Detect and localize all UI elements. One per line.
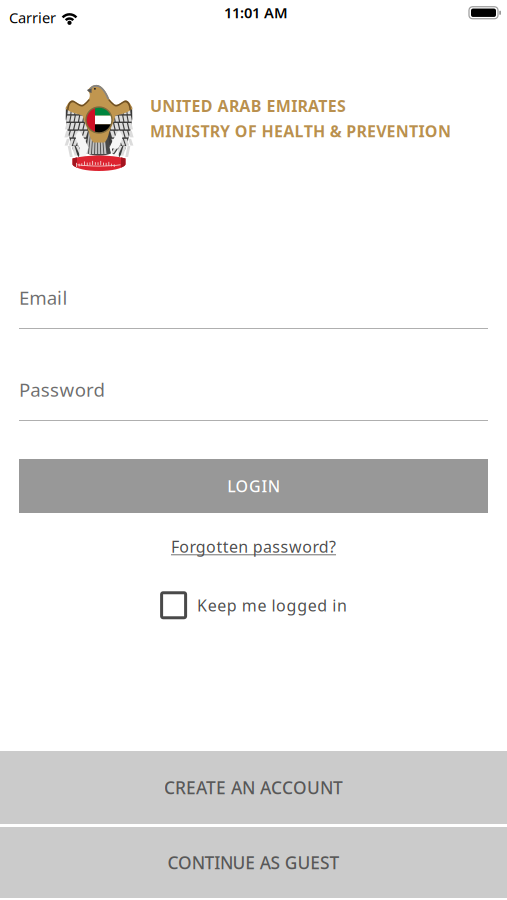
button[interactable]: LOGIN	[19, 459, 488, 513]
button[interactable]: Forgotten password?	[171, 528, 336, 565]
staticText: Forgotten password?	[171, 536, 336, 557]
staticText: UNITED ARAB EMIRATES	[150, 95, 346, 116]
staticText: Keep me logged in	[197, 595, 347, 616]
button[interactable]: Email	[19, 285, 488, 329]
button[interactable]: Keep me logged in	[160, 586, 347, 624]
staticText: 11:01 AM	[224, 3, 288, 22]
button[interactable]: Password	[19, 377, 488, 421]
staticText: MINISTRY OF HEALTH & PREVENTION	[150, 120, 451, 142]
staticText: Password	[19, 377, 104, 402]
staticText: CREATE AN ACCOUNT	[164, 776, 343, 799]
button[interactable]: CREATE AN ACCOUNT	[0, 751, 507, 824]
staticText: Email	[19, 285, 67, 310]
staticText: Carrier	[9, 8, 56, 27]
staticText: CONTINUE AS GUEST	[167, 851, 340, 874]
staticText: LOGIN	[227, 475, 280, 497]
button[interactable]: CONTINUE AS GUEST	[0, 827, 507, 898]
